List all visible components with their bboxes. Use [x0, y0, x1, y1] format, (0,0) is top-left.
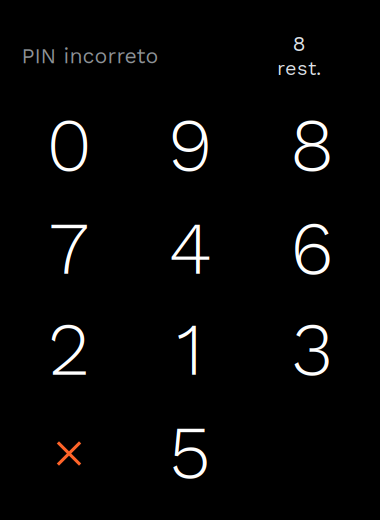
staticText: 1 — [176, 305, 203, 393]
staticText: rest. — [277, 56, 321, 80]
staticText: 8 — [292, 31, 305, 56]
button[interactable]: 2 — [8, 298, 130, 400]
button[interactable]: 4 — [129, 197, 251, 299]
staticText: 6 — [290, 204, 333, 292]
button[interactable]: 3 — [251, 298, 373, 400]
staticText: 9 — [168, 101, 212, 189]
staticText: 2 — [48, 305, 90, 393]
staticText: PIN incorreto — [21, 43, 158, 68]
staticText: 0 — [46, 101, 91, 189]
staticText: 5 — [169, 408, 211, 496]
button[interactable]: 1 — [129, 298, 251, 400]
button[interactable]: 8 — [251, 94, 373, 196]
button[interactable]: 7 — [8, 197, 130, 299]
staticText: 3 — [291, 305, 332, 393]
button[interactable]: 0 — [8, 94, 130, 196]
button[interactable]: 9 — [129, 94, 251, 196]
staticText: 7 — [49, 204, 89, 292]
staticText: 4 — [168, 204, 211, 292]
button[interactable]: 6 — [251, 197, 373, 299]
staticText: 8 — [290, 101, 334, 189]
button[interactable]: Cancel — [8, 402, 130, 505]
button[interactable]: 5 — [129, 401, 251, 503]
